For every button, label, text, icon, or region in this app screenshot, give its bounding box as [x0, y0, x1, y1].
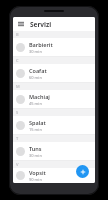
button[interactable]: Coafat [13, 64, 95, 82]
button[interactable]: Tuns [13, 142, 95, 160]
staticText: 90 min [29, 177, 42, 182]
button[interactable]: Barbierit [13, 38, 95, 56]
button[interactable]: Machiaj [13, 90, 95, 108]
staticText: Coafat [29, 67, 47, 74]
staticText: B [16, 32, 19, 37]
staticText: T [16, 136, 19, 141]
staticText: 30 min [29, 153, 42, 158]
button[interactable]: Vopsit [13, 168, 95, 183]
staticText: Tuns [29, 145, 42, 152]
staticText: 60 min [29, 75, 42, 80]
staticText: 15 min [29, 127, 42, 132]
button[interactable]: Spalat [13, 116, 95, 134]
staticText: 45 min [29, 101, 42, 106]
staticText: Servizi [30, 20, 52, 29]
button[interactable]: Add service [76, 165, 89, 178]
button[interactable]: Open navigation menu [16, 19, 26, 29]
staticText: Barbierit [29, 41, 53, 48]
staticText: S [16, 110, 19, 115]
staticText: Machiaj [29, 93, 50, 100]
staticText: Vopsit [29, 169, 46, 176]
staticText: Spalat [29, 119, 46, 126]
staticText: V [16, 162, 19, 167]
staticText: C [16, 58, 19, 63]
staticText: M [16, 84, 20, 89]
staticText: 30 min [29, 49, 42, 54]
